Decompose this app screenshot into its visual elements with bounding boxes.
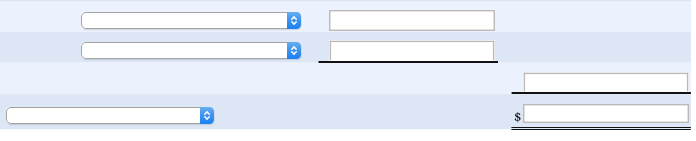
button[interactable]: Description xyxy=(329,40,495,61)
button[interactable]: Select category xyxy=(81,12,301,29)
button[interactable]: Select category xyxy=(81,42,301,59)
button[interactable]: Description xyxy=(329,10,495,31)
staticText: $ xyxy=(514,108,522,126)
button[interactable]: Select item xyxy=(6,107,214,124)
button[interactable]: Quantity xyxy=(523,72,689,92)
button[interactable]: Amount xyxy=(523,104,689,123)
